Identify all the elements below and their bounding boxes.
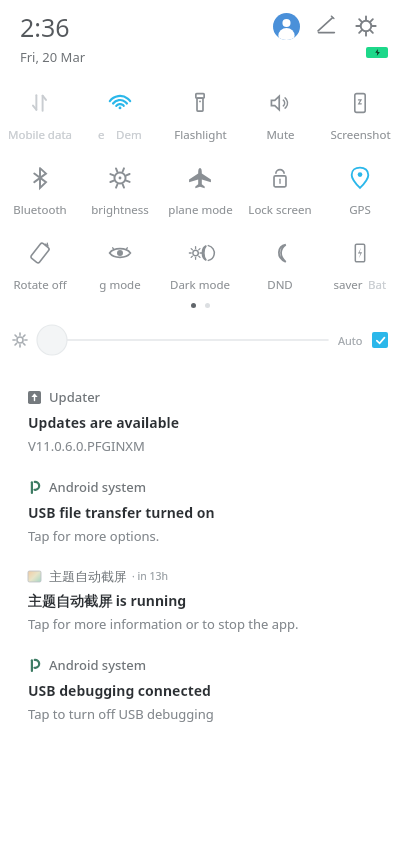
staticText: saver — [333, 277, 363, 293]
staticText: Flashlight — [174, 127, 227, 143]
staticText: Updater — [49, 388, 101, 406]
staticText: Mobile data — [8, 127, 72, 143]
staticText: brightness — [91, 202, 149, 218]
staticText: Fri, 20 Mar — [20, 48, 86, 66]
staticText: 主题自动截屏 is running — [28, 591, 187, 610]
button[interactable]: Dark mode — [160, 238, 240, 295]
staticText: 2:36 — [20, 10, 70, 44]
staticText: Lock screen — [248, 202, 312, 218]
staticText: Dark mode — [170, 277, 230, 293]
staticText: Android system — [49, 478, 147, 496]
button[interactable]: Mute — [240, 88, 320, 145]
staticText: Dem — [116, 127, 142, 143]
button[interactable]: plane mode — [160, 163, 240, 220]
staticText: USB debugging connected — [28, 681, 211, 700]
button[interactable]: User account — [266, 6, 306, 46]
staticText: V11.0.6.0.PFGINXM — [28, 437, 145, 455]
staticText: · in 13h — [132, 569, 168, 583]
button[interactable]: Bluetooth — [0, 163, 80, 220]
staticText: DND — [267, 277, 293, 293]
button[interactable]: Mobile data — [0, 88, 80, 145]
button[interactable]: e — [80, 88, 160, 145]
staticText: USB file transfer turned on — [28, 503, 215, 522]
button[interactable]: Edit — [306, 6, 346, 46]
staticText: Auto — [338, 333, 363, 348]
button[interactable]: DND — [240, 238, 320, 295]
staticText: plane mode — [168, 202, 233, 218]
button[interactable]: g mode — [80, 238, 160, 295]
button[interactable]: Updater — [28, 388, 372, 455]
button[interactable]: Flashlight — [160, 88, 240, 145]
staticText: 主题自动截屏 — [49, 568, 127, 584]
button[interactable]: brightness — [80, 163, 160, 220]
staticText: g mode — [99, 277, 141, 293]
staticText: Rotate off — [13, 277, 67, 293]
button[interactable]: Settings — [346, 6, 386, 46]
button[interactable]: Screenshot — [320, 88, 400, 145]
staticText: Tap for more information or to stop the … — [28, 615, 299, 633]
button[interactable]: Android system — [28, 478, 372, 545]
button[interactable]: GPS — [320, 163, 400, 220]
staticText: Android system — [49, 656, 147, 674]
staticText: Updates are available — [28, 413, 180, 432]
button[interactable]: Auto brightness — [372, 332, 388, 348]
button[interactable]: Android system — [28, 656, 372, 723]
staticText: Mute — [266, 127, 295, 143]
staticText: Bat — [368, 277, 387, 293]
button[interactable]: Rotate off — [0, 238, 80, 295]
staticText: Screenshot — [330, 127, 391, 143]
button[interactable]: saver — [320, 238, 400, 295]
staticText: Tap to turn off USB debugging — [28, 705, 214, 723]
button[interactable]: Lock screen — [240, 163, 320, 220]
staticText: Bluetooth — [13, 202, 67, 218]
staticText: e — [98, 127, 105, 143]
staticText: Tap for more options. — [28, 527, 160, 545]
staticText: GPS — [349, 202, 371, 218]
button[interactable]: 主题自动截屏 — [28, 568, 372, 633]
button[interactable] — [36, 323, 328, 357]
